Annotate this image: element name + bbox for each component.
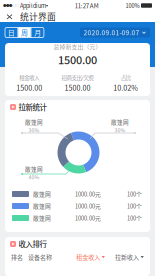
staticText: 1000.00元 — [75, 190, 101, 198]
staticText: 1500.00 — [64, 82, 90, 93]
staticText: 总掉新支出（元） — [53, 42, 101, 51]
button[interactable]: 租金收入 — [76, 253, 105, 261]
staticText: 敞篷网 — [111, 118, 129, 126]
staticText: 占比 — [121, 73, 131, 81]
staticText: 1500.00 — [16, 82, 42, 93]
staticText: 周 — [21, 27, 28, 37]
staticText: 30% — [28, 126, 39, 134]
button[interactable]: Close — [3, 11, 19, 22]
staticText: ○○ — [12, 3, 18, 8]
button[interactable]: 周 — [18, 27, 31, 37]
staticText: 敞篷网 — [33, 214, 51, 222]
staticText: 租金收入 — [19, 73, 39, 81]
staticText: 拉新收入 — [115, 253, 139, 261]
staticText: 拉新统计 — [18, 102, 46, 112]
button[interactable]: 拉新收入 — [115, 253, 144, 261]
staticText: 100个 — [127, 202, 142, 210]
staticText: 日 — [8, 27, 15, 37]
staticText: 10.02% — [113, 82, 138, 93]
staticText: 敞篷网 — [25, 165, 43, 173]
staticText: 设备名称 — [28, 253, 52, 261]
staticText: 1000.00元 — [75, 214, 101, 222]
staticText: 100% — [125, 1, 139, 9]
staticText: 租金收入 — [76, 253, 100, 261]
button[interactable]: 2020.09.01-09.07 — [80, 27, 150, 37]
button[interactable]: 月 — [31, 27, 44, 37]
button[interactable]: 日 — [5, 27, 17, 37]
staticText: 30% — [114, 126, 125, 134]
staticText: 1000.00元 — [75, 202, 101, 210]
staticText: 100个 — [127, 214, 142, 222]
staticText: 排名 — [11, 253, 23, 261]
staticText: 敞篷网 — [33, 202, 51, 210]
staticText: 40% — [28, 173, 39, 181]
staticText: 敞篷网 — [25, 118, 43, 126]
staticText: ▾ — [46, 3, 48, 8]
staticText: Appildium — [20, 1, 46, 9]
staticText: 敞篷网 — [33, 190, 51, 198]
staticText: 统计界面 — [20, 10, 56, 23]
staticText: 月 — [34, 27, 41, 37]
staticText: 100个 — [127, 190, 142, 198]
staticText: 2020.09.01-09.07 — [83, 28, 139, 37]
staticText: 1500.00 — [58, 52, 97, 67]
staticText: 11:27 AM — [75, 1, 99, 10]
staticText: 招商支出/欠费 — [61, 73, 93, 81]
staticText: 收入排行 — [18, 239, 46, 249]
staticText: ●●● — [3, 3, 12, 8]
